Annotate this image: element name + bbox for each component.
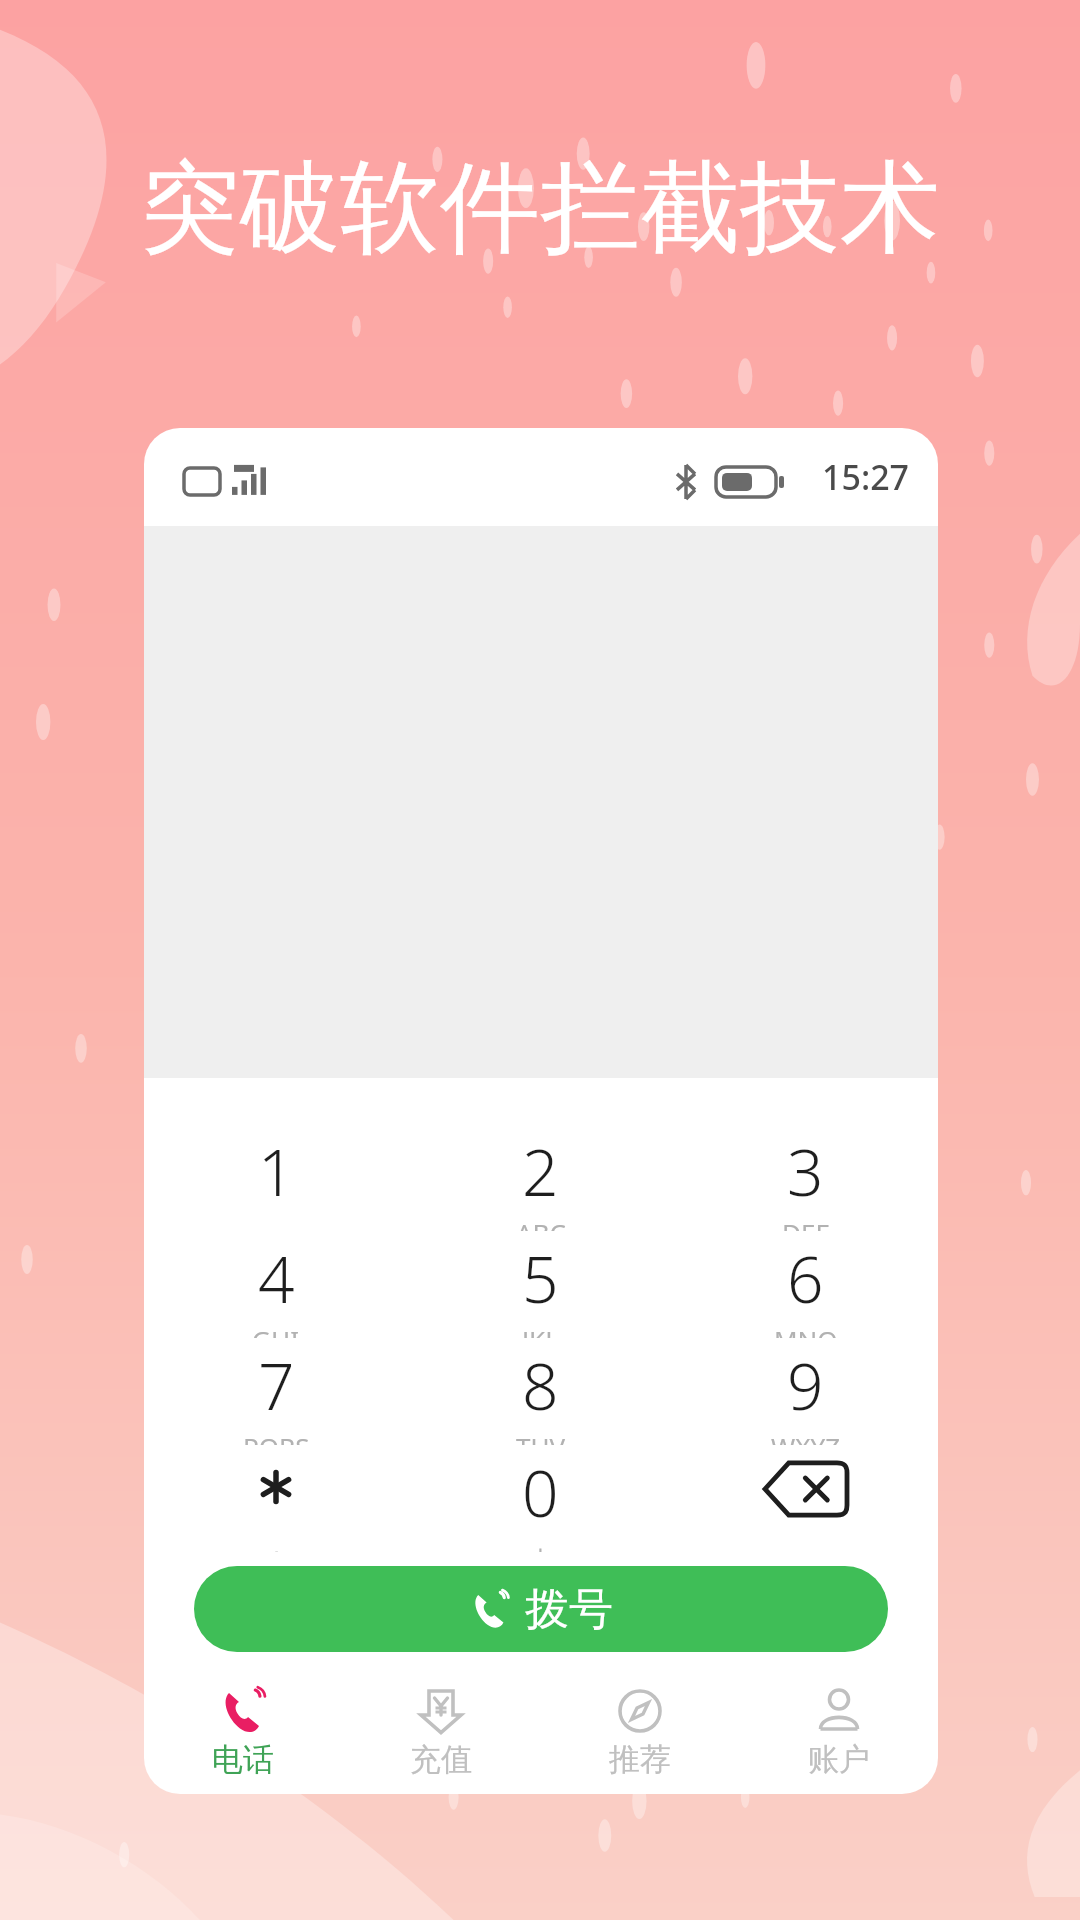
button[interactable]: 账户 (739, 1678, 938, 1794)
staticText: 充值 (410, 1740, 472, 1779)
staticText: 拨号 (525, 1582, 613, 1637)
button[interactable]: 电话 (144, 1678, 342, 1794)
button[interactable]: Star (144, 1445, 408, 1552)
staticText: 15:27 (822, 454, 910, 500)
button[interactable]: 推荐 (540, 1678, 739, 1794)
staticText: , (273, 1527, 280, 1552)
button[interactable]: Backspace (673, 1445, 938, 1552)
staticText: 6 (787, 1235, 824, 1322)
button[interactable]: 7 (144, 1338, 408, 1445)
staticText: 9 (787, 1342, 824, 1429)
staticText: DEF (782, 1215, 829, 1231)
button[interactable]: 4 (144, 1231, 408, 1338)
staticText: 8 (522, 1342, 559, 1429)
button[interactable]: 3 (673, 1124, 938, 1231)
staticText: ABC (516, 1215, 566, 1231)
button[interactable]: 拨号 (194, 1566, 888, 1652)
staticText: 突破软件拦截技术 (140, 146, 940, 272)
staticText: 推荐 (609, 1740, 671, 1779)
staticText: WXYZ (771, 1429, 841, 1445)
staticText: 4 (258, 1235, 295, 1322)
staticText: 电话 (212, 1740, 274, 1779)
staticText: 账户 (808, 1740, 870, 1779)
staticText: MNO (774, 1322, 838, 1338)
staticText: JKL (522, 1322, 559, 1338)
staticText: PQRS (243, 1429, 310, 1445)
staticText: TUV (516, 1429, 566, 1445)
staticText: 5 (522, 1235, 559, 1322)
staticText: 1 (258, 1128, 295, 1215)
button[interactable]: 0 (408, 1445, 673, 1552)
staticText: 7 (258, 1342, 295, 1429)
button[interactable]: 1 (144, 1124, 408, 1231)
staticText: 0 (522, 1449, 559, 1536)
staticText: 3 (787, 1128, 824, 1215)
button[interactable]: 5 (408, 1231, 673, 1338)
button[interactable]: 8 (408, 1338, 673, 1445)
button[interactable]: 2 (408, 1124, 673, 1231)
button[interactable]: 充值 (342, 1678, 540, 1794)
staticText: 2 (522, 1128, 559, 1215)
staticText: + (533, 1536, 548, 1552)
button[interactable]: 6 (673, 1231, 938, 1338)
staticText: GHI (252, 1322, 300, 1338)
button[interactable]: 9 (673, 1338, 938, 1445)
